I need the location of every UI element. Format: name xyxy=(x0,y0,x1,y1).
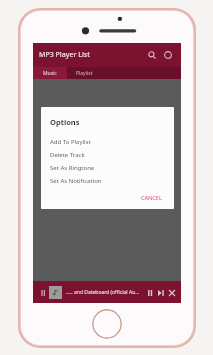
staticText: Add To Playlist xyxy=(50,138,91,146)
button[interactable] xyxy=(49,286,62,299)
button[interactable]: Close player xyxy=(166,287,177,298)
button[interactable]: Queue xyxy=(37,287,48,298)
staticText: Set As Notification xyxy=(50,177,102,185)
button[interactable]: Playlist xyxy=(67,67,101,79)
button[interactable]: Delete Track xyxy=(50,148,165,161)
button[interactable]: More options xyxy=(161,48,175,62)
button[interactable]: CANCEL xyxy=(138,191,165,204)
staticText: MP3 Player List xyxy=(39,50,90,60)
button[interactable]: Set As Ringtone xyxy=(50,161,165,174)
staticText: ..... and Dateboard (official Audio) xyxy=(66,289,141,296)
button[interactable]: Set As Notification xyxy=(50,174,165,187)
button[interactable]: Search xyxy=(145,48,159,62)
button[interactable]: Next track xyxy=(155,287,166,298)
button[interactable]: Add To Playlist xyxy=(50,135,165,148)
staticText: Options xyxy=(50,117,80,127)
staticText: Music xyxy=(43,70,57,77)
button[interactable]: Home xyxy=(92,309,122,339)
staticText: Playlist xyxy=(76,70,93,77)
button[interactable]: Pause xyxy=(144,287,155,298)
staticText: Delete Track xyxy=(50,151,85,159)
staticText: CANCEL xyxy=(141,194,162,201)
staticText: Set As Ringtone xyxy=(50,164,95,172)
button[interactable]: Music xyxy=(33,67,67,79)
